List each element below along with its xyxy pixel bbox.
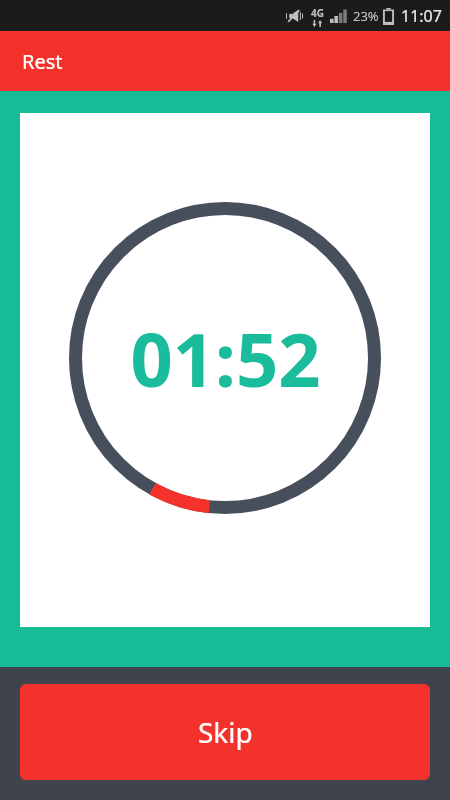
button[interactable]: Skip xyxy=(20,684,430,780)
staticText: 11:07 xyxy=(401,5,442,27)
staticText: 4G xyxy=(311,6,324,20)
staticText: 01:52 xyxy=(130,308,321,409)
button[interactable]: Rest xyxy=(0,31,450,91)
staticText: Rest xyxy=(22,48,63,75)
staticText: Skip xyxy=(198,713,253,751)
staticText: 23% xyxy=(353,7,379,25)
